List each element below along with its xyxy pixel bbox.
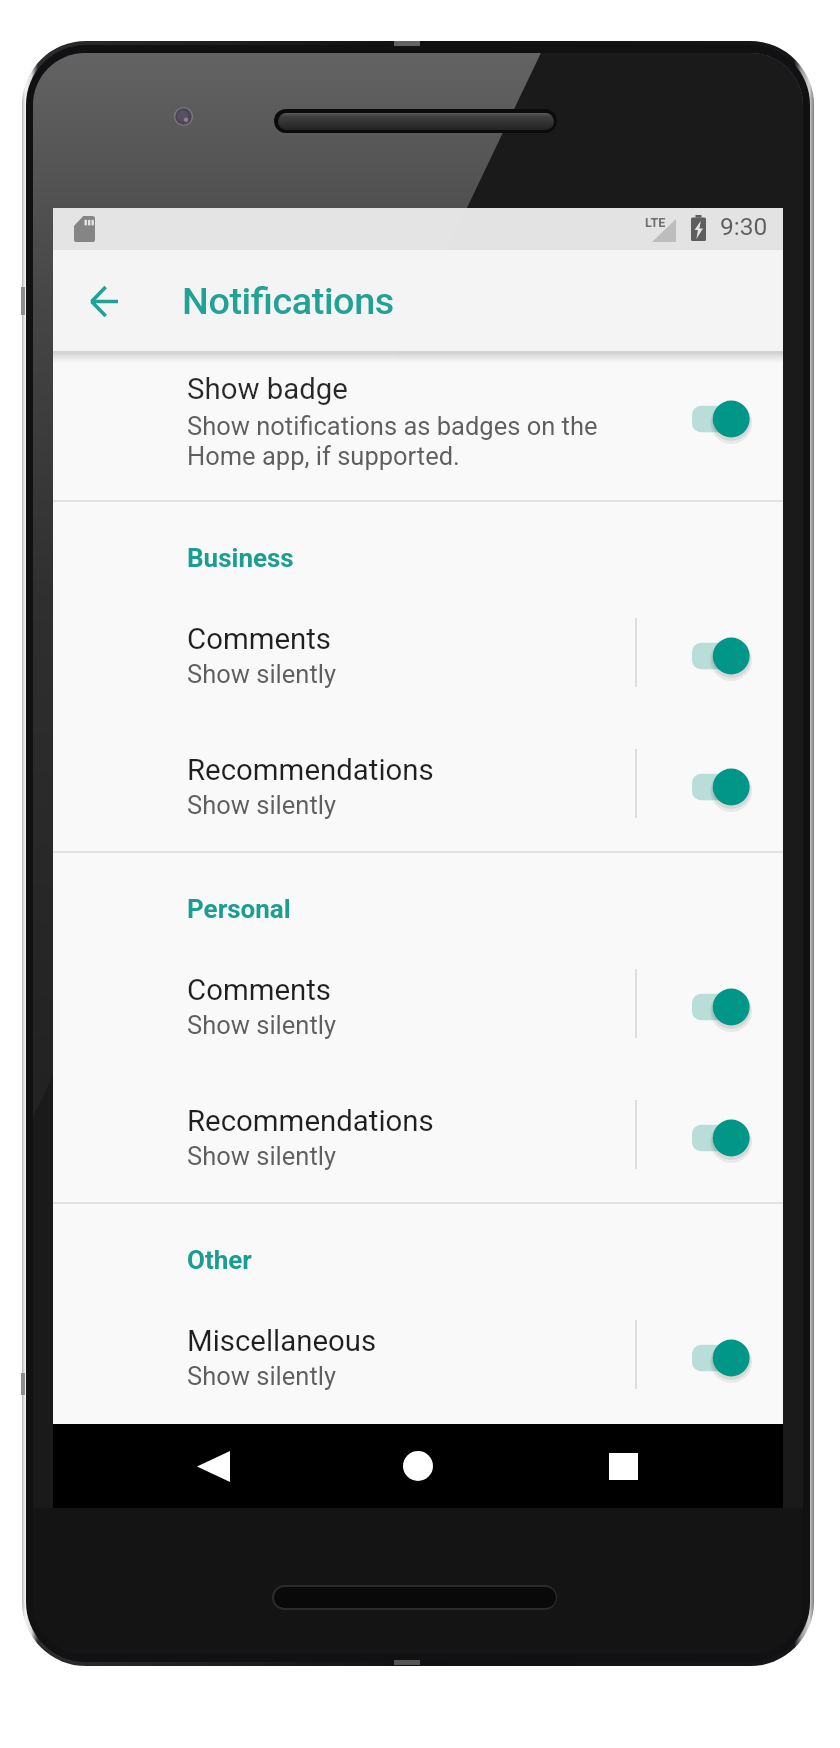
staticText: Show silently [187,659,336,689]
staticText: Recommendations [187,753,434,787]
button[interactable] [674,397,766,441]
staticText: Show silently [187,1141,336,1171]
staticText: Business [187,543,294,573]
button[interactable] [674,634,766,678]
button[interactable]: Show badge [53,352,783,500]
button[interactable]: Back [153,1424,273,1508]
button[interactable] [674,765,766,809]
button[interactable]: Home [358,1424,478,1508]
staticText: Personal [187,894,291,924]
button[interactable]: Miscellaneous [53,1324,783,1455]
button[interactable]: Back [67,264,141,338]
button[interactable]: Recommendations [53,1104,783,1235]
staticText: Show silently [187,1361,336,1391]
staticText: Show silently [187,1010,336,1040]
button[interactable]: Recents [563,1424,683,1508]
button[interactable]: Comments [53,622,783,753]
staticText: Show badge [187,372,348,406]
button[interactable] [674,985,766,1029]
staticText: Comments [187,622,332,656]
staticText: Miscellaneous [187,1324,377,1358]
button[interactable]: Recommendations [53,753,783,884]
button[interactable] [674,1116,766,1160]
staticText: Notifications [182,279,394,323]
staticText: 9:30 [720,212,768,241]
staticText: Show silently [187,790,336,820]
staticText: LTE [645,215,666,230]
staticText: Recommendations [187,1104,434,1138]
staticText: Show notifications as badges on the Home… [187,411,598,471]
staticText: Comments [187,973,332,1007]
button[interactable] [674,1336,766,1380]
staticText: Other [187,1245,252,1275]
button[interactable]: Comments [53,973,783,1104]
